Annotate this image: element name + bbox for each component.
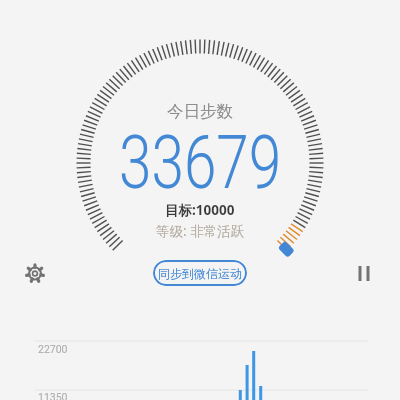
staticText: 11350 <box>38 391 68 400</box>
button[interactable]: 同步到微信运动 <box>153 260 247 286</box>
staticText: 同步到微信运动 <box>158 266 242 281</box>
staticText: 22700 <box>38 343 68 355</box>
staticText: 33679 <box>119 118 282 206</box>
button[interactable] <box>22 260 48 286</box>
button[interactable] <box>352 261 376 285</box>
staticText: 今日步数 <box>167 101 233 122</box>
staticText: 等级: 非常活跃 <box>156 222 245 240</box>
staticText: 目标:10000 <box>165 201 235 219</box>
